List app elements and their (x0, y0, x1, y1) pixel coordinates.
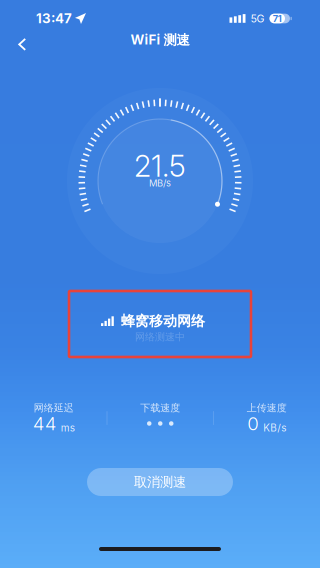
staticText: KB/s (263, 422, 286, 434)
staticText: 网络延迟 (34, 402, 74, 414)
staticText: 21.5 (134, 148, 186, 184)
staticText: 0 (247, 412, 259, 435)
staticText: 13:47 (36, 10, 72, 26)
staticText: 44 (33, 412, 57, 435)
button[interactable]: 返回 (6, 26, 39, 63)
staticText: 取消测速 (134, 474, 186, 490)
staticText: ms (61, 422, 75, 434)
staticText: 71 (273, 13, 282, 24)
staticText: 上传速度 (247, 402, 287, 414)
button[interactable]: 取消测速 (87, 468, 233, 496)
staticText: 5G (250, 12, 264, 25)
staticText: MB/s (149, 177, 171, 189)
staticText: 蜂窝移动网络 (121, 312, 205, 330)
staticText: 下载速度 (140, 402, 180, 414)
staticText: 网络测速中 (135, 331, 185, 343)
staticText: WiFi 测速 (130, 32, 189, 48)
